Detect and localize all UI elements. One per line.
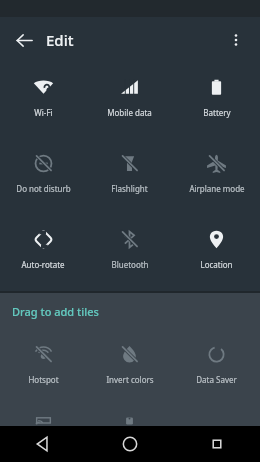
button[interactable]: Do not disturb xyxy=(0,139,86,215)
button[interactable]: Cast xyxy=(0,406,86,426)
staticText: Wi-Fi xyxy=(34,107,53,118)
staticText: Airplane mode xyxy=(189,183,245,194)
button[interactable]: Location xyxy=(173,215,260,291)
button[interactable]: Back xyxy=(0,426,86,462)
staticText: Do not disturb xyxy=(16,183,71,194)
staticText: Flashlight xyxy=(111,183,148,194)
staticText: Location xyxy=(200,259,233,270)
button[interactable]: Wi-Fi xyxy=(0,63,86,139)
staticText: Edit xyxy=(46,30,74,50)
staticText: Hotspot xyxy=(28,374,59,385)
button[interactable]: Back xyxy=(8,24,40,56)
staticText: Invert colors xyxy=(106,374,154,385)
button[interactable]: Data Saver xyxy=(173,330,260,406)
staticText: Bluetooth xyxy=(111,259,149,270)
button[interactable]: Nearby xyxy=(86,406,173,426)
staticText: Data Saver xyxy=(196,374,237,385)
button[interactable]: Recents xyxy=(173,426,260,462)
button[interactable]: Auto-rotate xyxy=(0,215,86,291)
button[interactable]: Flashlight xyxy=(86,139,173,215)
staticText: Battery xyxy=(203,107,231,118)
button[interactable]: More options xyxy=(220,24,252,56)
button[interactable]: Invert colors xyxy=(86,330,173,406)
button[interactable]: Battery xyxy=(173,63,260,139)
button[interactable]: Mobile data xyxy=(86,63,173,139)
staticText: Auto-rotate xyxy=(21,259,65,270)
button[interactable]: Hotspot xyxy=(0,330,86,406)
button[interactable]: Airplane mode xyxy=(173,139,260,215)
button[interactable]: Home xyxy=(86,426,173,462)
button[interactable]: Bluetooth xyxy=(86,215,173,291)
staticText: Mobile data xyxy=(107,107,152,118)
staticText: Drag to add tiles xyxy=(12,304,99,319)
